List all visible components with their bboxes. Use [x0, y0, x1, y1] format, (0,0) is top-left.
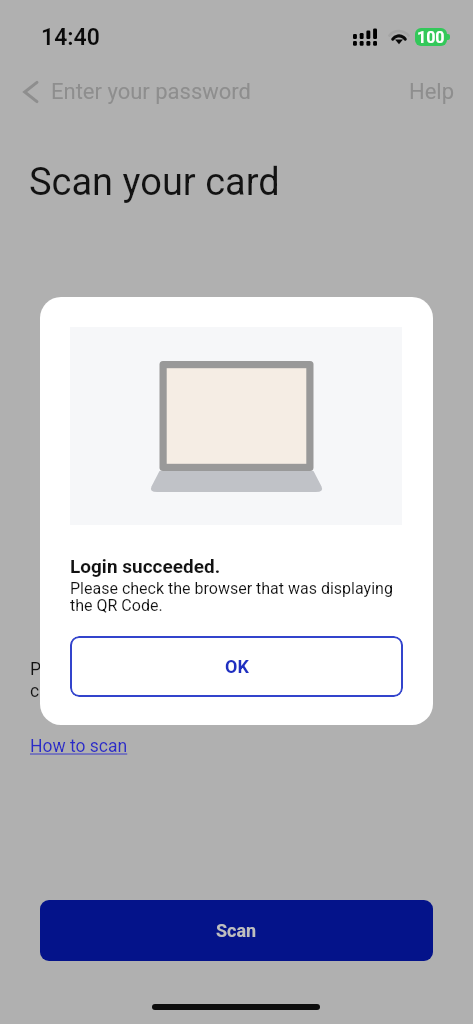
button[interactable]: OK [70, 636, 403, 697]
staticText: OK [225, 656, 249, 677]
staticText: 14:40 [41, 24, 100, 51]
staticText: Please check the browser that was displa… [70, 579, 393, 615]
button[interactable]: How to scan [30, 736, 128, 757]
staticText: How to scan [30, 736, 128, 757]
button[interactable]: Scan [40, 900, 433, 961]
staticText: Scan [216, 920, 257, 941]
staticText: Please scan the QR code displayed on com… [30, 659, 326, 701]
staticText: Login succeeded. [70, 555, 221, 577]
button[interactable]: Back [22, 79, 252, 105]
staticText: Scan your card [29, 160, 280, 205]
staticText: Enter your password [51, 79, 252, 105]
staticText: 100 [417, 28, 445, 46]
staticText: Help [409, 79, 455, 105]
button[interactable]: Help [409, 79, 455, 105]
